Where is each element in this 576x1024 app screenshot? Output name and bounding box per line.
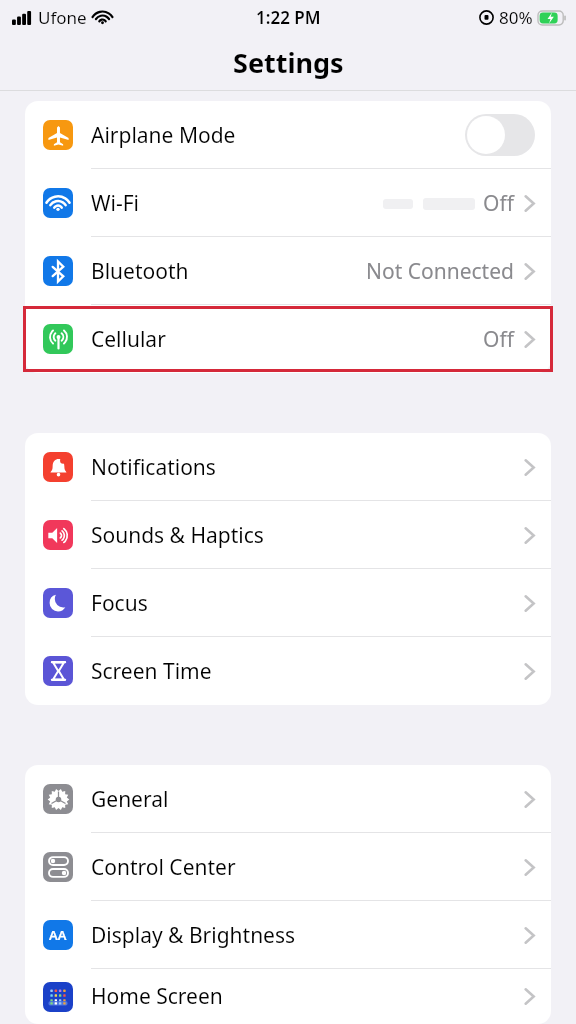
- button[interactable]: Notifications: [25, 433, 551, 501]
- staticText: 1:22 PM: [256, 6, 321, 29]
- button[interactable]: Bluetooth: [25, 237, 551, 305]
- staticText: AA: [49, 926, 67, 944]
- staticText: Focus: [91, 589, 148, 618]
- button[interactable]: Focus: [25, 569, 551, 637]
- staticText: Display & Brightness: [91, 921, 296, 950]
- staticText: Off: [483, 325, 514, 354]
- button[interactable]: General: [25, 765, 551, 833]
- staticText: General: [91, 785, 169, 814]
- staticText: Home Screen: [91, 982, 223, 1011]
- staticText: Settings: [233, 44, 344, 81]
- staticText: Wi-Fi: [91, 189, 140, 218]
- staticText: Cellular: [91, 325, 166, 354]
- staticText: Ufone: [38, 6, 87, 29]
- button[interactable]: Home Screen: [25, 969, 551, 1024]
- button[interactable]: Screen Time: [25, 637, 551, 705]
- button[interactable]: Cellular: [25, 305, 551, 373]
- staticText: Sounds & Haptics: [91, 521, 264, 550]
- staticText: Not Connected: [366, 257, 514, 286]
- staticText: Notifications: [91, 453, 216, 482]
- staticText: Bluetooth: [91, 257, 189, 286]
- staticText: Screen Time: [91, 657, 212, 686]
- staticText: Airplane Mode: [91, 121, 236, 150]
- staticText: Control Center: [91, 853, 236, 882]
- button[interactable]: Control Center: [25, 833, 551, 901]
- staticText: 80%: [499, 6, 533, 29]
- button[interactable]: Wi-Fi: [25, 169, 551, 237]
- button[interactable]: AA: [25, 901, 551, 969]
- staticText: Off: [483, 189, 514, 218]
- button[interactable]: Sounds & Haptics: [25, 501, 551, 569]
- button[interactable]: Airplane Mode: [25, 101, 551, 169]
- button[interactable]: Airplane Mode toggle: [465, 114, 535, 156]
